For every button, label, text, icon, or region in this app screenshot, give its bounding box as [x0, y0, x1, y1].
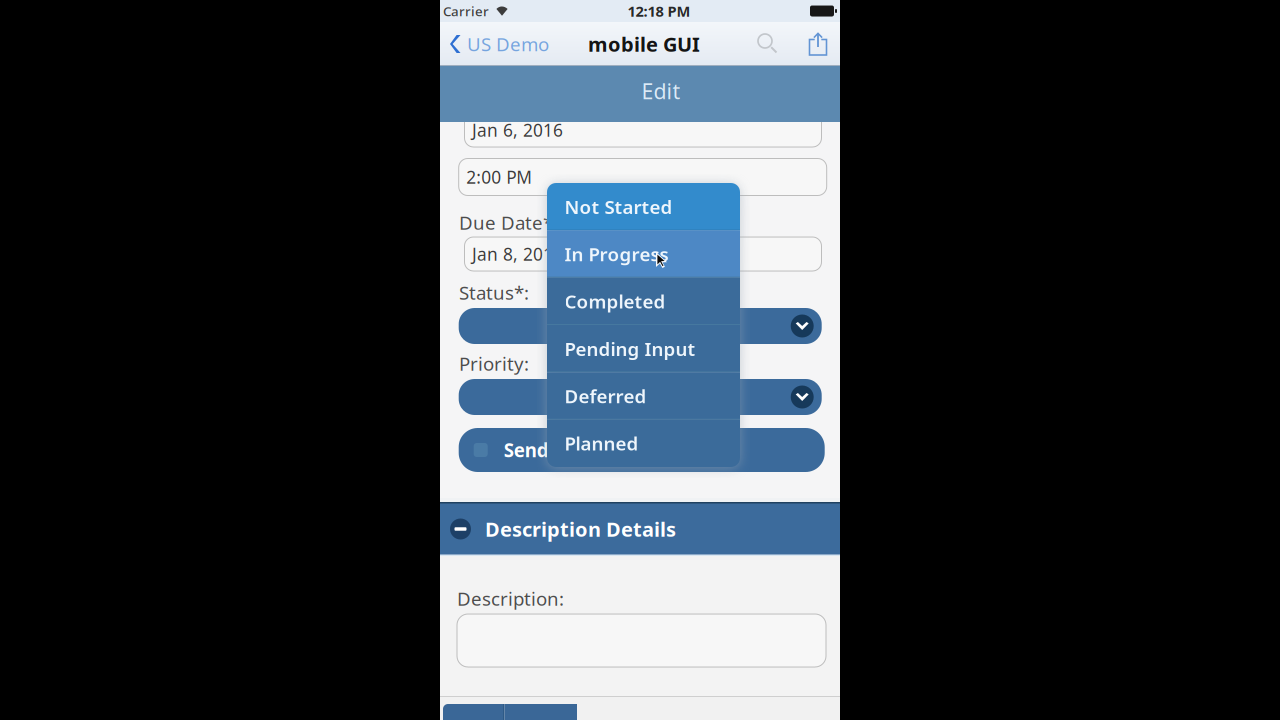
staticText: Not Started	[564, 194, 672, 219]
staticText: Description:	[457, 586, 564, 611]
staticText: Completed	[564, 289, 665, 314]
staticText: In Progress	[564, 242, 668, 266]
staticText: Jan 8, 2016	[472, 242, 563, 265]
staticText: Send	[504, 438, 549, 462]
staticText: US Demo	[467, 32, 549, 56]
button[interactable]	[459, 308, 822, 344]
button[interactable]: Save	[443, 704, 503, 720]
staticText: 12:18 PM	[627, 1, 690, 21]
button[interactable]: Cancel	[504, 704, 577, 720]
staticText: Planned	[564, 431, 638, 456]
staticText: mobile GUI	[588, 31, 700, 57]
staticText: Due Date*:	[459, 210, 558, 235]
button[interactable]: Send	[459, 428, 825, 472]
staticText: Jan 6, 2016	[472, 118, 563, 141]
button[interactable]: Share	[801, 22, 835, 66]
button[interactable]: Planned	[547, 420, 740, 467]
button[interactable]: Search	[749, 22, 787, 66]
staticText: Priority:	[459, 351, 529, 376]
staticText: Description Details	[485, 516, 676, 542]
button[interactable]: Edit	[440, 66, 840, 122]
staticText: Deferred	[564, 384, 646, 408]
staticText: Carrier	[443, 2, 489, 20]
staticText: Pending Input	[564, 336, 695, 361]
button[interactable]	[459, 379, 822, 415]
button[interactable]: Completed	[547, 278, 740, 325]
button[interactable]: Deferred	[547, 372, 740, 420]
button[interactable]: In Progress	[547, 230, 740, 278]
staticText: 2:00 PM	[466, 165, 532, 188]
staticText: Edit	[641, 77, 680, 105]
button[interactable]: Pending Input	[547, 325, 740, 372]
staticText: Status*:	[459, 280, 529, 305]
button[interactable]: Description Details	[440, 502, 840, 556]
button[interactable]: US Demo	[441, 22, 558, 66]
button[interactable]: Not Started	[547, 183, 740, 230]
